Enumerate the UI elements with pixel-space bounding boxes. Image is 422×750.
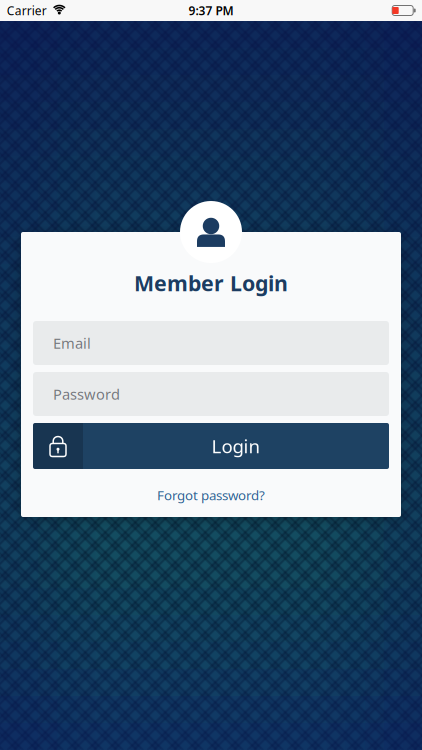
staticText: Forgot password?: [157, 486, 265, 504]
staticText: Carrier: [7, 2, 47, 18]
staticText: 9:37 PM: [188, 2, 233, 18]
button[interactable]: Forgot password?: [157, 486, 265, 504]
staticText: Password: [53, 384, 120, 404]
button[interactable]: Email: [33, 321, 389, 365]
staticText: Email: [53, 333, 91, 353]
staticText: Login: [211, 434, 260, 458]
staticText: Member Login: [134, 269, 288, 297]
button[interactable]: Password: [33, 372, 389, 416]
button[interactable]: Login: [33, 423, 389, 469]
